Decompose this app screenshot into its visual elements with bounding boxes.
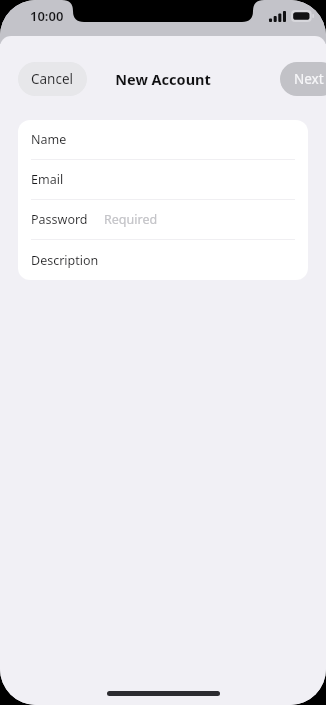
staticText: Email bbox=[31, 171, 64, 188]
button[interactable]: Description bbox=[18, 240, 308, 280]
staticText: Password bbox=[31, 211, 88, 228]
staticText: Required bbox=[104, 211, 158, 228]
button[interactable]: Password bbox=[18, 200, 308, 240]
button[interactable]: Next bbox=[280, 62, 326, 96]
staticText: Next bbox=[294, 70, 324, 88]
button[interactable]: Name bbox=[18, 120, 308, 160]
button[interactable]: Email bbox=[18, 160, 308, 200]
staticText: Name bbox=[31, 131, 67, 148]
other: Battery bbox=[291, 10, 315, 22]
staticText: New Account bbox=[115, 69, 211, 89]
other: Cellular signal bbox=[269, 11, 286, 22]
staticText: Description bbox=[31, 252, 99, 269]
staticText: Cancel bbox=[31, 70, 74, 88]
staticText: 10:00 bbox=[30, 7, 64, 25]
button[interactable]: Cancel bbox=[18, 62, 87, 96]
